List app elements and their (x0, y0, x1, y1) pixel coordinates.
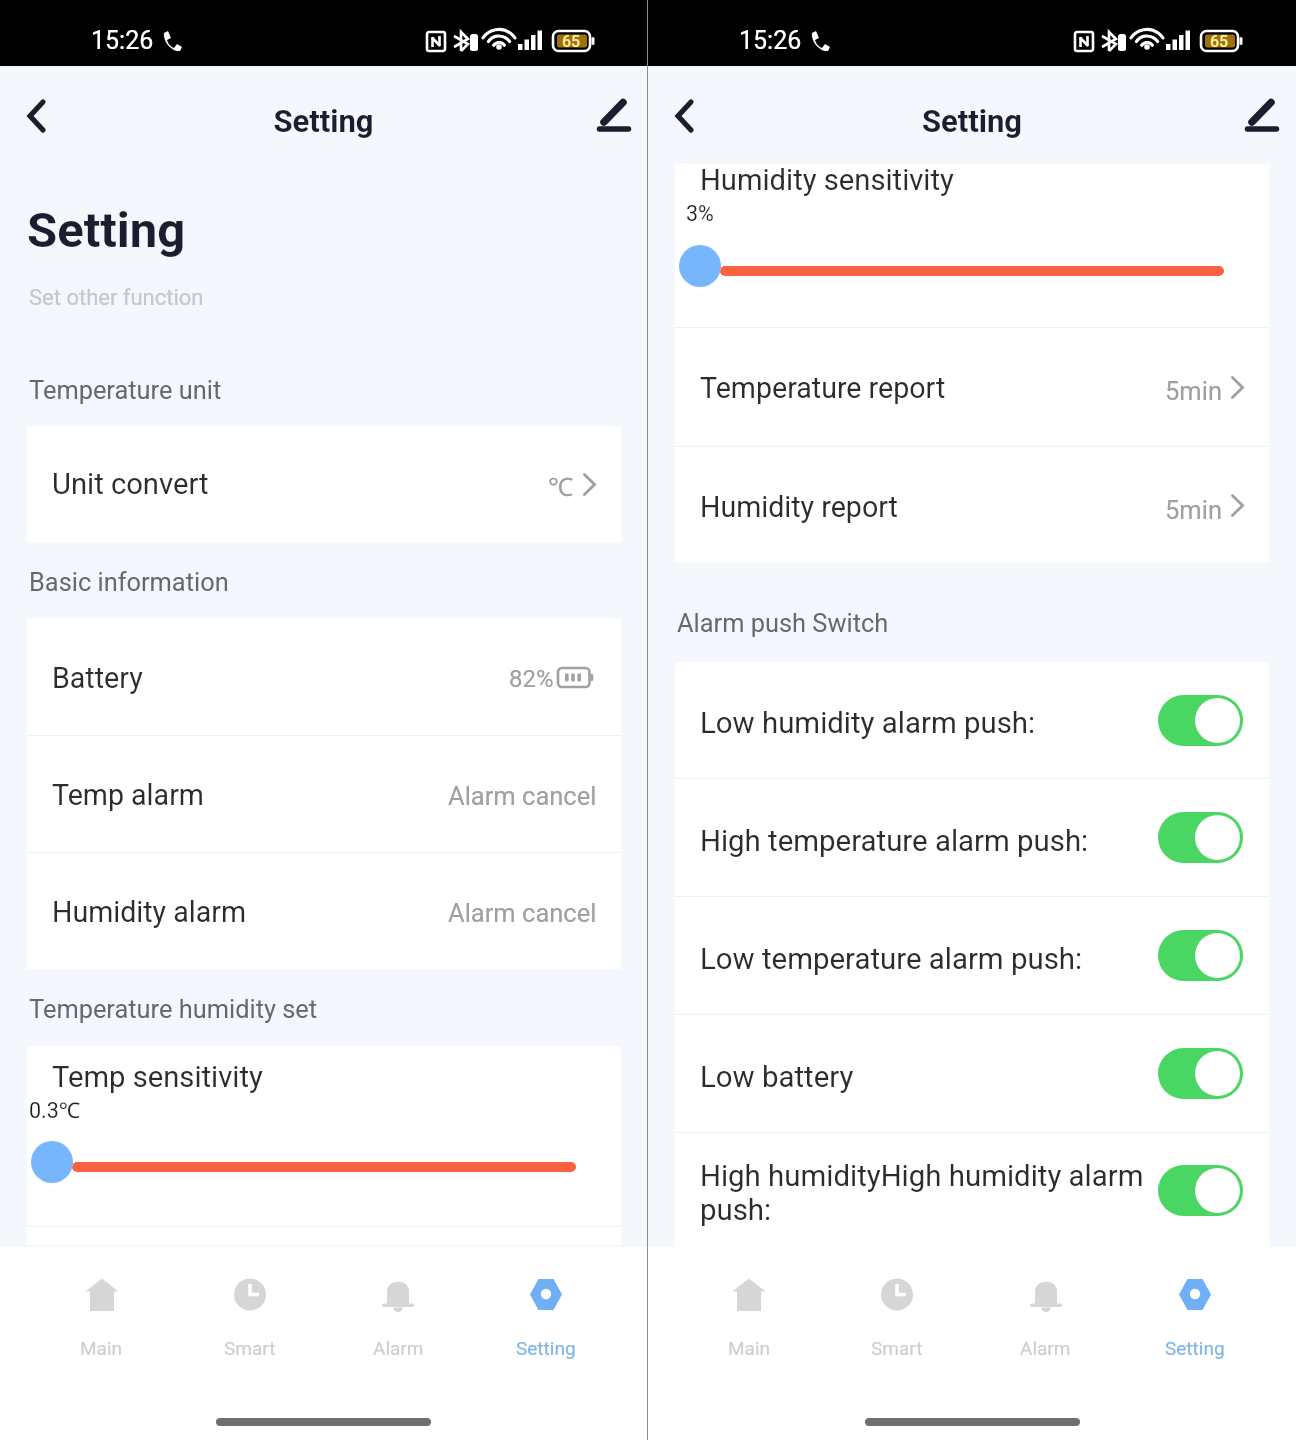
staticText: Main (80, 1337, 123, 1359)
button[interactable]: Low humidity alarm push: (675, 662, 1269, 778)
button[interactable]: Toggle switch (1158, 812, 1243, 863)
staticText: High temperature alarm push: (700, 824, 1148, 858)
button[interactable]: Main (27, 1247, 176, 1367)
button[interactable]: Alarm (971, 1247, 1120, 1367)
staticText: Unit convert (52, 467, 538, 501)
staticText: Low battery (700, 1060, 1148, 1094)
button[interactable]: Setting (472, 1247, 620, 1367)
button[interactable]: Toggle switch (1158, 695, 1243, 746)
staticText: 15:26 (739, 26, 802, 55)
staticText: Humidity sensitivity (700, 163, 954, 197)
staticText: 0.3℃ (29, 1095, 81, 1124)
staticText: ℃ (548, 469, 574, 504)
staticText: Low humidity alarm push: (700, 706, 1148, 740)
staticText: 65 (562, 32, 581, 51)
staticText: Alarm (373, 1337, 424, 1359)
button[interactable]: Toggle switch (1158, 930, 1243, 981)
button[interactable]: High temperature alarm push: (675, 779, 1269, 896)
staticText: Temperature humidity set (29, 994, 318, 1024)
staticText: Setting (648, 103, 1296, 139)
staticText: Basic information (29, 567, 229, 597)
staticText: Main (728, 1337, 771, 1359)
button[interactable]: Low temperature alarm push: (675, 897, 1269, 1014)
staticText: Set other function (29, 285, 204, 311)
staticText: Setting (1165, 1337, 1225, 1359)
button[interactable]: Humidity report (675, 447, 1269, 564)
button[interactable]: Unit convert (27, 426, 621, 543)
button[interactable]: Setting (1120, 1247, 1269, 1367)
staticText: Humidity alarm (52, 895, 438, 929)
staticText: Setting (516, 1337, 576, 1359)
button[interactable]: Low battery (675, 1015, 1269, 1132)
staticText: 3% (686, 201, 714, 226)
staticText: Alarm (1020, 1337, 1071, 1359)
staticText: High humidityHigh humidity alarm push: (700, 1159, 1148, 1227)
staticText: Temp sensitivity (52, 1060, 263, 1094)
staticText: Low temperature alarm push: (700, 942, 1148, 976)
staticText: Alarm push Switch (677, 608, 889, 638)
button[interactable]: High humidityHigh humidity alarm push: (675, 1133, 1269, 1247)
staticText: Smart (224, 1337, 276, 1359)
staticText: 65 (1210, 32, 1229, 51)
button[interactable]: Smart (176, 1247, 324, 1367)
button[interactable]: Main (675, 1247, 823, 1367)
button[interactable]: Smart (823, 1247, 971, 1367)
button[interactable]: Edit (581, 80, 641, 140)
staticText: Setting (0, 103, 647, 139)
button[interactable]: Battery (27, 618, 621, 735)
staticText: Smart (871, 1337, 923, 1359)
button[interactable]: Toggle switch (1158, 1165, 1243, 1216)
staticText: 5min (1165, 376, 1222, 406)
button[interactable]: Toggle switch (1158, 1048, 1243, 1099)
staticText: Battery (52, 661, 499, 695)
staticText: 82% (509, 665, 554, 693)
staticText: Alarm cancel (448, 781, 597, 811)
button[interactable]: Edit (1229, 80, 1289, 140)
button[interactable]: Alarm (324, 1247, 472, 1367)
staticText: Humidity report (700, 490, 1155, 524)
button[interactable]: Humidity alarm (27, 853, 621, 969)
staticText: Alarm cancel (448, 898, 597, 928)
button[interactable]: Back (654, 82, 714, 142)
staticText: Temperature report (700, 371, 1155, 405)
button[interactable]: Temperature report (675, 328, 1269, 446)
staticText: Temperature unit (29, 375, 222, 405)
staticText: Temp alarm (52, 778, 438, 812)
staticText: 15:26 (91, 26, 154, 55)
button[interactable]: Back (6, 82, 66, 142)
button[interactable]: Temp alarm (27, 736, 621, 852)
staticText: Setting (27, 202, 186, 259)
staticText: 5min (1165, 495, 1222, 525)
button[interactable]: Temp sensitivity slider (27, 1138, 621, 1186)
button[interactable]: Humidity sensitivity slider (675, 242, 1269, 290)
